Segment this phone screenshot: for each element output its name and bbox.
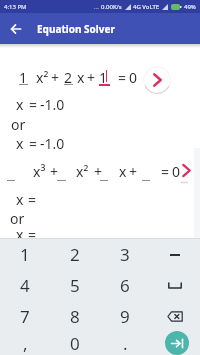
button[interactable] — [0, 13, 31, 44]
button[interactable]: 5 — [50, 270, 100, 301]
staticText: x — [16, 225, 24, 238]
button[interactable] — [150, 239, 200, 270]
staticText: 7 — [20, 305, 30, 328]
staticText: Equation Solver — [37, 22, 115, 36]
staticText: x — [16, 190, 24, 209]
staticText: = — [29, 134, 38, 153]
staticText: + — [129, 162, 138, 181]
staticText: 4 — [20, 274, 30, 297]
staticText: = — [28, 190, 37, 209]
staticText: x — [119, 162, 127, 181]
staticText: -1.0 — [40, 134, 65, 153]
staticText: = — [29, 95, 38, 114]
staticText: 8 — [70, 305, 80, 328]
staticText: 2 — [70, 243, 80, 266]
staticText: x² — [76, 162, 89, 181]
staticText: 0 — [129, 68, 138, 87]
button[interactable]: 3 — [100, 239, 150, 270]
staticText: 0 — [70, 332, 80, 355]
staticText: or — [10, 209, 25, 228]
button[interactable] — [143, 66, 171, 94]
button[interactable]: 1 — [0, 239, 50, 270]
button[interactable] — [165, 331, 189, 355]
staticText: x — [16, 134, 24, 153]
staticText: , — [23, 332, 28, 355]
staticText: 1 — [99, 68, 108, 87]
staticText: 0 — [172, 162, 181, 181]
button[interactable] — [179, 162, 200, 188]
button[interactable] — [150, 301, 200, 331]
button[interactable]: , — [0, 331, 50, 355]
button[interactable]: 0 — [50, 331, 100, 355]
button[interactable]: 8 — [50, 301, 100, 331]
staticText: x — [16, 95, 24, 114]
staticText: + — [94, 162, 103, 181]
staticText: 1 — [20, 243, 30, 266]
staticText: 9 — [120, 305, 130, 328]
staticText: 5 — [70, 274, 80, 297]
staticText: 3 — [120, 243, 130, 266]
button[interactable]: 9 — [100, 301, 150, 331]
staticText: 2 — [64, 68, 73, 87]
staticText: = — [118, 68, 127, 87]
button[interactable] — [150, 331, 200, 355]
staticText: or — [11, 115, 26, 134]
button[interactable] — [150, 270, 200, 301]
button[interactable]: 2 — [50, 239, 100, 270]
staticText: x² — [36, 68, 49, 87]
staticText: x³ — [33, 162, 46, 181]
staticText: 49% — [184, 3, 196, 11]
staticText: = — [28, 225, 37, 238]
staticText: -1.0 — [40, 95, 65, 114]
staticText: = — [161, 162, 170, 181]
button[interactable]: 4 — [0, 270, 50, 301]
staticText: + — [87, 68, 96, 87]
staticText: 0.00K/s — [101, 3, 122, 11]
button[interactable]: 6 — [100, 270, 150, 301]
staticText: + — [50, 162, 59, 181]
staticText: 6 — [120, 274, 130, 297]
staticText: ... — [94, 3, 99, 11]
staticText: . — [123, 332, 128, 355]
staticText: 1 — [19, 68, 28, 87]
staticText: 4G VoLTE — [133, 3, 160, 11]
staticText: + — [51, 68, 60, 87]
button[interactable]: . — [100, 331, 150, 355]
staticText: 4:13 PM — [4, 3, 27, 11]
staticText: x — [77, 68, 85, 87]
button[interactable]: 7 — [0, 301, 50, 331]
